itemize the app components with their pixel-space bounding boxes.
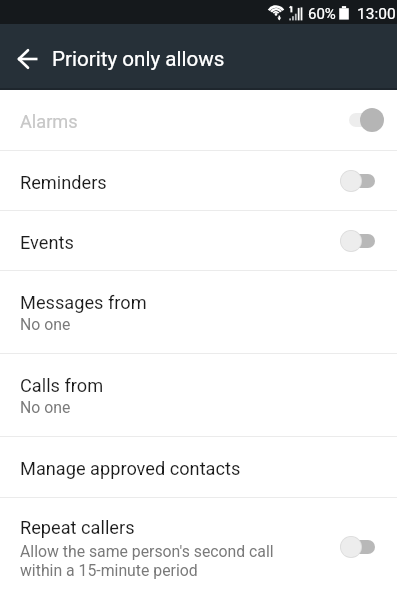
staticText: Priority only allows bbox=[52, 47, 225, 71]
staticText: 13:00 bbox=[357, 5, 396, 23]
staticText: Reminders bbox=[20, 172, 107, 193]
staticText: Allow the same person's second call with… bbox=[20, 542, 274, 580]
button[interactable]: Navigate up bbox=[6, 26, 48, 92]
staticText: Events bbox=[20, 232, 74, 253]
button[interactable]: Reminders bbox=[0, 151, 397, 210]
button[interactable]: Alarms bbox=[341, 105, 397, 135]
button[interactable]: Reminders bbox=[341, 166, 397, 196]
button[interactable]: Manage approved contacts bbox=[0, 437, 397, 497]
button[interactable]: Calls from bbox=[0, 354, 397, 436]
button[interactable]: Events bbox=[341, 226, 397, 256]
staticText: Messages from bbox=[20, 292, 147, 313]
button[interactable]: Repeat callers bbox=[0, 498, 397, 597]
staticText: 60% bbox=[308, 5, 336, 23]
button[interactable]: Messages from bbox=[0, 271, 397, 353]
staticText: Manage approved contacts bbox=[20, 458, 241, 479]
staticText: Alarms bbox=[20, 111, 78, 132]
staticText: No one bbox=[20, 398, 71, 417]
staticText: Calls from bbox=[20, 375, 104, 396]
button[interactable]: Repeat callers bbox=[341, 532, 397, 562]
staticText: Repeat callers bbox=[20, 517, 135, 538]
button[interactable]: Alarms bbox=[0, 90, 397, 150]
button[interactable]: Events bbox=[0, 211, 397, 270]
staticText: No one bbox=[20, 315, 71, 334]
